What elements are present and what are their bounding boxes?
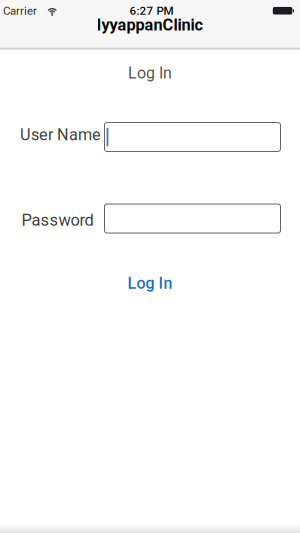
staticText: Log In: [127, 274, 172, 293]
staticText: User Name: [20, 125, 101, 144]
staticText: Carrier: [3, 4, 37, 17]
staticText: Password: [21, 210, 93, 230]
staticText: IyyappanClinic: [96, 15, 203, 34]
staticText: 6:27 PM: [129, 4, 173, 18]
button[interactable]: User Name: [104, 122, 281, 152]
button[interactable]: Password: [104, 203, 281, 233]
staticText: Log In: [128, 64, 172, 82]
button[interactable]: Log In: [127, 272, 172, 292]
